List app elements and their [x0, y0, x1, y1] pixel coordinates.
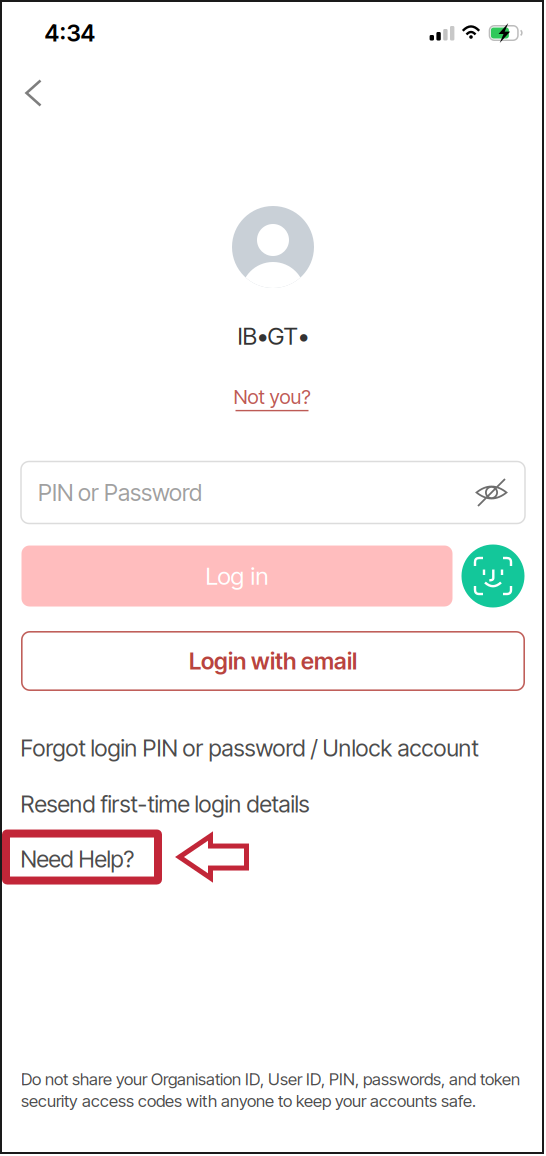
button[interactable]: Forgot login PIN or password / Unlock ac…: [20, 728, 520, 768]
staticText: PIN or Password: [38, 478, 202, 507]
staticText: IB•GT•: [237, 321, 308, 350]
button[interactable]: Log in: [21, 545, 452, 606]
staticText: Not you?: [233, 385, 310, 409]
button[interactable]: Login with email: [21, 631, 525, 691]
button[interactable]: Face ID: [461, 544, 524, 607]
staticText: 4:34: [44, 19, 95, 47]
staticText: Do not share your Organisation ID, User …: [21, 1069, 520, 1089]
button[interactable]: Back: [8, 64, 59, 122]
button[interactable]: Show password: [475, 476, 508, 508]
button[interactable]: Resend first-time login details: [20, 784, 520, 824]
button[interactable]: Need Help?: [20, 839, 520, 879]
staticText: Need Help?: [20, 845, 134, 873]
staticText: Login with email: [189, 647, 357, 675]
staticText: Forgot login PIN or password / Unlock ac…: [20, 734, 478, 762]
button[interactable]: Not you?: [225, 379, 318, 417]
staticText: security access codes with anyone to kee…: [21, 1091, 476, 1111]
staticText: Resend first-time login details: [20, 790, 309, 818]
staticText: Log in: [205, 561, 268, 590]
